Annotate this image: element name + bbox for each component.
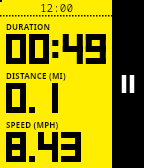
button[interactable]: Pause workout <box>112 0 144 168</box>
staticText: DISTANCE (MI) <box>6 70 66 81</box>
staticText: SPEED (MPH) <box>6 119 59 130</box>
staticText: DURATION <box>6 21 51 32</box>
staticText: 12:00 <box>40 0 73 15</box>
